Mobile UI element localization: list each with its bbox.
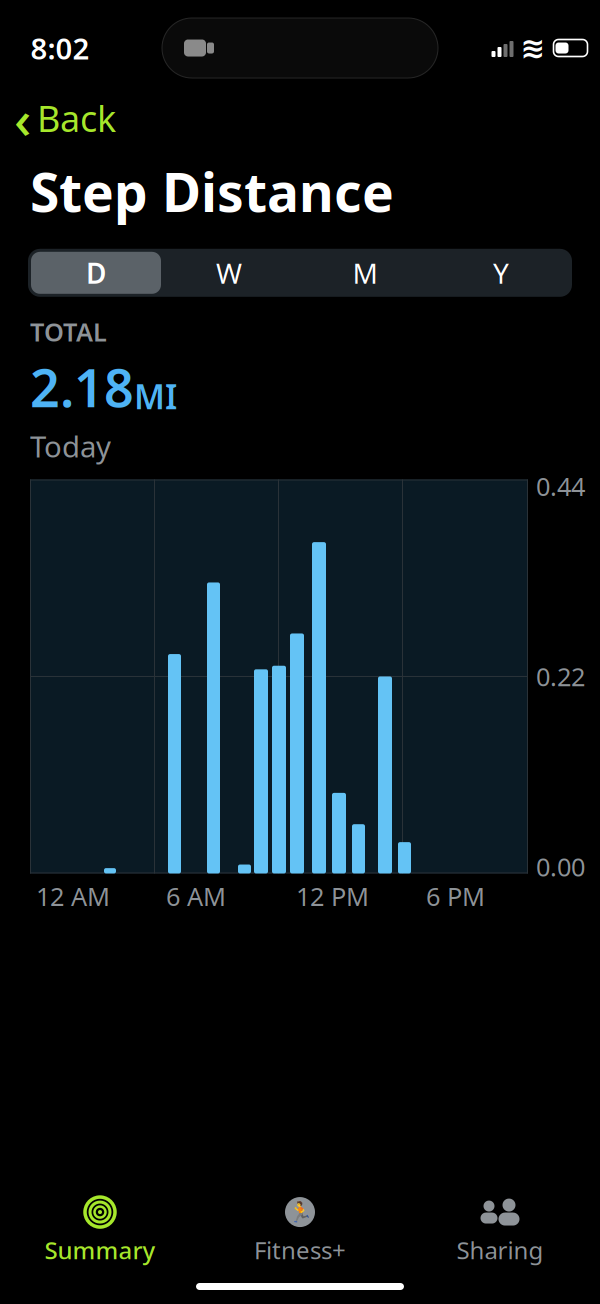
staticText: Fitness+ xyxy=(254,1234,346,1266)
staticText: 6 AM xyxy=(166,879,226,913)
staticText: Y xyxy=(493,254,509,291)
staticText: 0.22 xyxy=(536,660,585,693)
staticText: 8:02 xyxy=(30,28,89,67)
staticText: Today xyxy=(30,426,111,465)
button[interactable]: 🏃 xyxy=(200,1196,400,1266)
staticText: Step Distance xyxy=(30,156,394,227)
staticText: ‹ xyxy=(14,83,31,153)
button[interactable]: ‹ xyxy=(0,96,130,140)
staticText: 6 PM xyxy=(426,879,485,913)
staticText: Sharing xyxy=(456,1234,543,1266)
staticText: 0.44 xyxy=(536,469,585,503)
staticText: Summary xyxy=(44,1234,155,1266)
staticText: 12 PM xyxy=(296,879,369,913)
staticText: 0.00 xyxy=(536,850,585,883)
staticText: W xyxy=(216,254,242,291)
button[interactable]: Sharing xyxy=(400,1196,600,1266)
button[interactable]: Summary xyxy=(0,1196,200,1266)
button[interactable]: Y xyxy=(433,252,569,294)
staticText: 🏃 xyxy=(287,1201,312,1223)
staticText: 12 AM xyxy=(36,879,110,913)
button[interactable]: D xyxy=(31,252,161,294)
staticText: Back xyxy=(37,94,116,142)
staticText: 2.18 xyxy=(30,352,134,422)
staticText: TOTAL xyxy=(30,315,107,348)
button[interactable]: W xyxy=(161,252,297,294)
staticText: D xyxy=(86,254,106,291)
staticText: MI xyxy=(134,374,177,419)
button[interactable]: M xyxy=(297,252,433,294)
staticText: ≋ xyxy=(520,31,545,65)
staticText: M xyxy=(352,254,377,291)
